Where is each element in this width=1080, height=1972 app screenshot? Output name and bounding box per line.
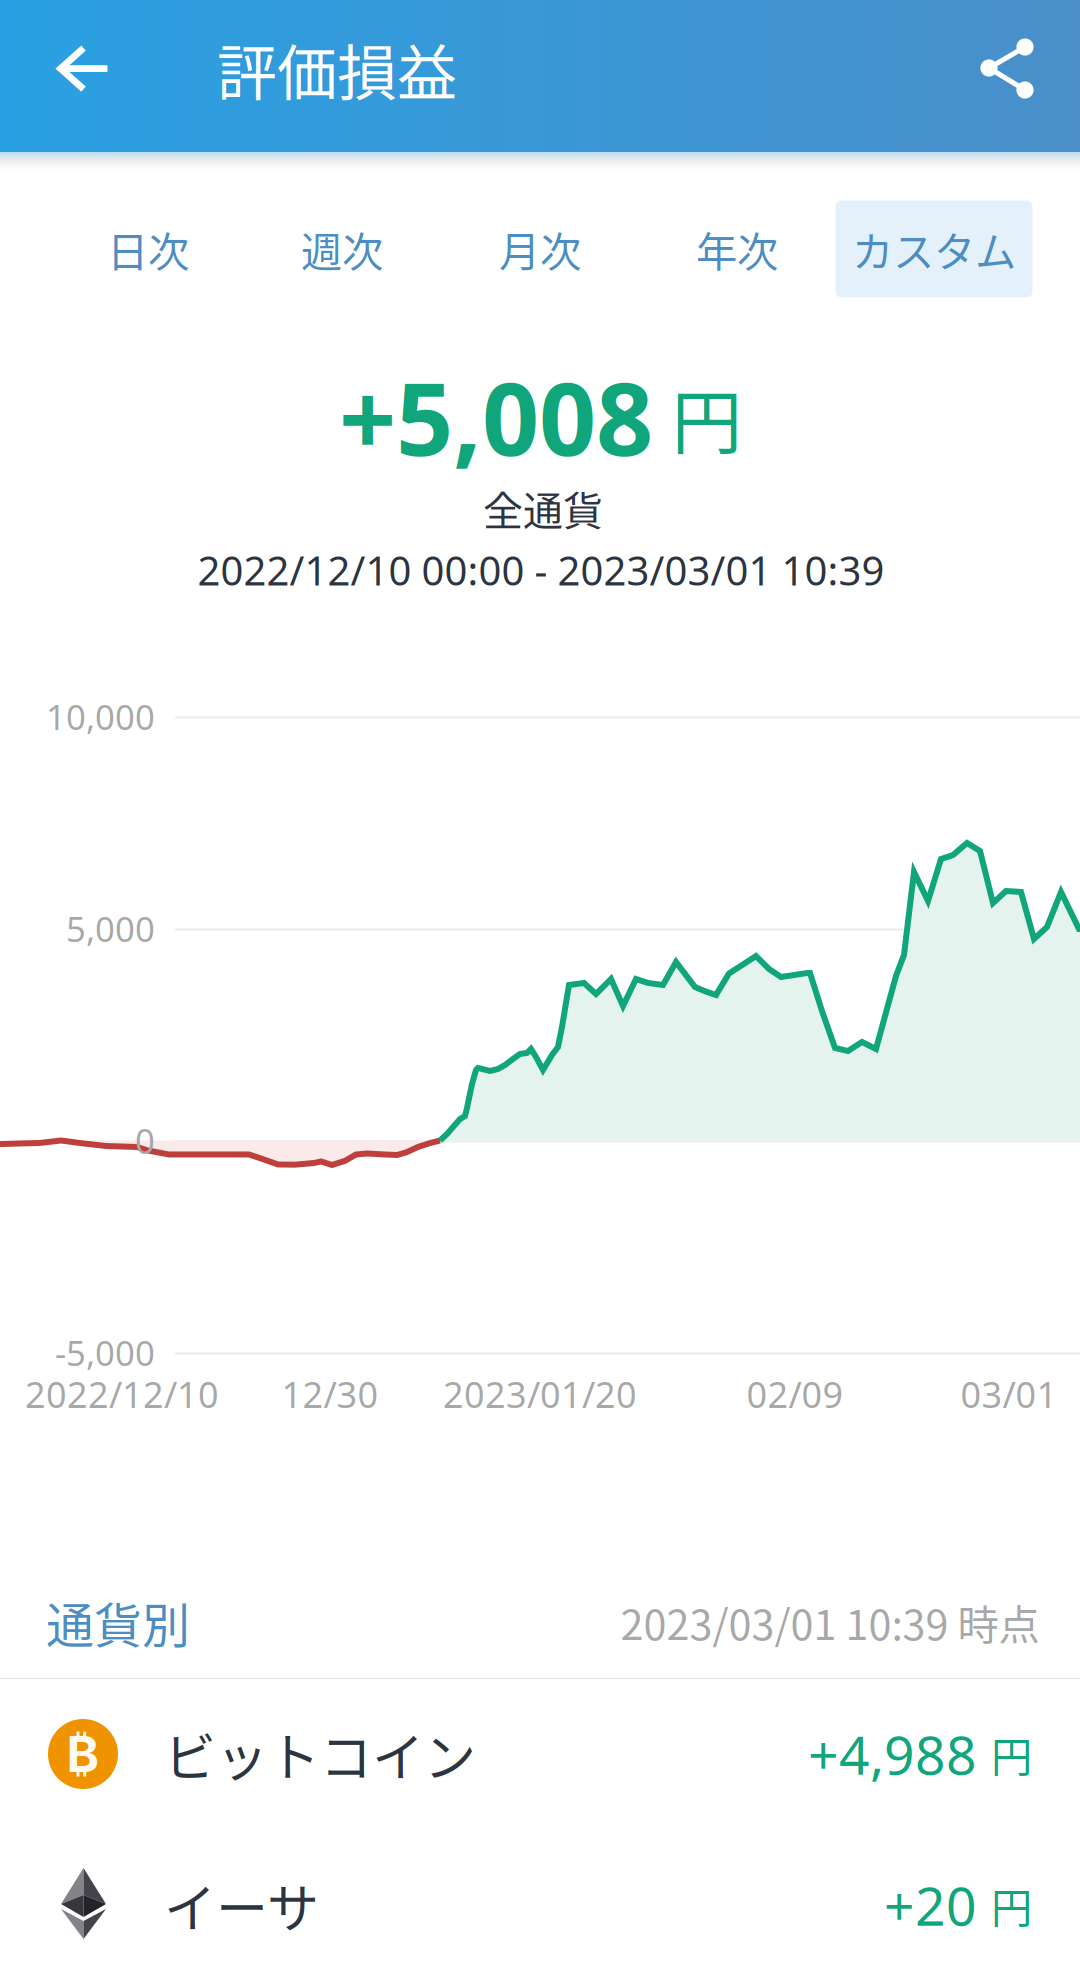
- staticText: イーサ: [164, 1867, 319, 1943]
- button[interactable]: 年次: [677, 200, 797, 297]
- staticText: カスタム: [852, 219, 1016, 279]
- button[interactable]: 日次: [88, 200, 208, 297]
- staticText: -5,000: [55, 1329, 155, 1375]
- staticText: +20: [884, 1870, 977, 1940]
- staticText: 03/01: [960, 1370, 1057, 1418]
- staticText: 5,000: [66, 905, 155, 951]
- staticText: 02/09: [746, 1370, 843, 1418]
- staticText: 2023/03/01 10:39 時点: [620, 1592, 1039, 1652]
- staticText: 10,000: [46, 693, 155, 739]
- staticText: 日次: [107, 219, 189, 279]
- staticText: 月次: [499, 219, 581, 279]
- button[interactable]: Share: [980, 38, 1036, 102]
- staticText: 2023/01/20: [443, 1370, 637, 1418]
- staticText: 円: [991, 1875, 1032, 1935]
- staticText: 2022/12/10: [25, 1370, 219, 1418]
- staticText: 全通貨: [483, 479, 603, 537]
- staticText: ビットコイン: [164, 1716, 476, 1792]
- staticText: 12/30: [281, 1370, 378, 1418]
- staticText: 0: [135, 1117, 155, 1163]
- button[interactable]: イーサ: [0, 1830, 1080, 1972]
- staticText: ₿: [66, 1724, 99, 1784]
- staticText: +5,008: [339, 351, 653, 483]
- staticText: 2022/12/10 00:00 - 2023/03/01 10:39: [197, 543, 884, 596]
- staticText: 週次: [301, 219, 383, 279]
- button[interactable]: ₿: [0, 1679, 1080, 1829]
- staticText: 通貨別: [46, 1587, 190, 1657]
- button[interactable]: 週次: [282, 200, 402, 297]
- staticText: 円: [671, 367, 742, 469]
- button[interactable]: カスタム: [835, 200, 1032, 297]
- staticText: 円: [991, 1724, 1032, 1784]
- button[interactable]: 月次: [480, 200, 600, 297]
- staticText: 評価損益: [217, 26, 457, 112]
- staticText: +4,988: [808, 1719, 977, 1789]
- staticText: 年次: [696, 219, 778, 279]
- button[interactable]: Back: [53, 39, 109, 99]
